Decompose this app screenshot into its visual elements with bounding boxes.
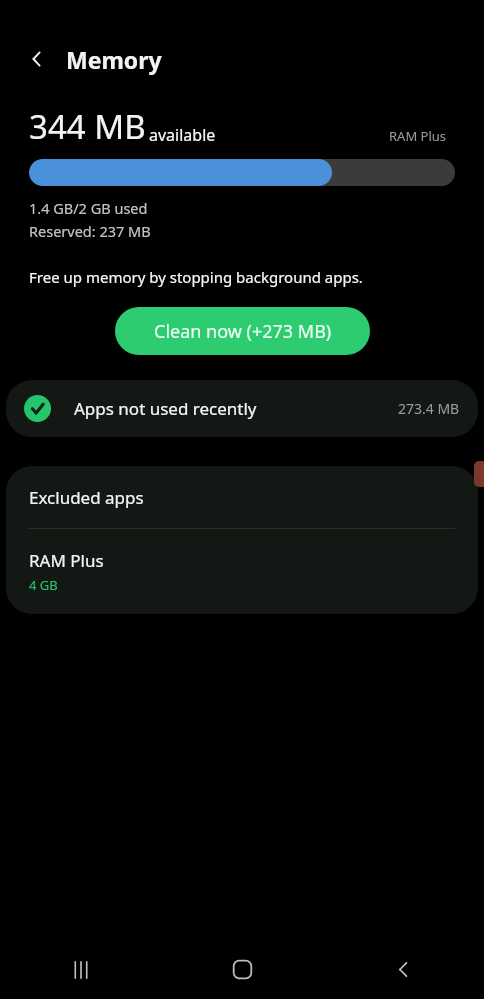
staticText: Excluded apps xyxy=(29,486,144,509)
staticText: Apps not used recently xyxy=(74,397,257,420)
staticText: Reserved: 237 MB xyxy=(29,221,151,241)
staticText: 4 GB xyxy=(29,576,58,594)
button[interactable]: Clean now (+273 MB) xyxy=(115,307,370,355)
button[interactable]: Back xyxy=(323,940,484,999)
staticText: Clean now (+273 MB) xyxy=(154,319,332,344)
staticText: Memory xyxy=(66,44,162,75)
button[interactable]: Home xyxy=(162,940,323,999)
button[interactable]: Apps not used recently xyxy=(6,380,478,437)
button[interactable]: RAM Plus xyxy=(6,529,478,614)
staticText: available xyxy=(149,124,216,146)
button[interactable]: Excluded apps xyxy=(6,466,478,528)
staticText: 1.4 GB/2 GB used xyxy=(29,198,148,218)
staticText: 273.4 MB xyxy=(398,399,460,418)
staticText: RAM Plus xyxy=(389,127,447,145)
staticText: RAM Plus xyxy=(29,549,104,572)
staticText: 344 MB xyxy=(29,104,146,149)
button[interactable]: Back xyxy=(17,39,57,79)
staticText: Free up memory by stopping background ap… xyxy=(29,267,363,287)
button[interactable]: Recent apps xyxy=(0,940,162,999)
